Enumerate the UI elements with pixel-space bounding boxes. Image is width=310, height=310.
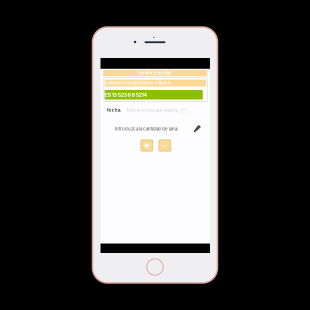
button[interactable]: ES13523685214 (105, 90, 203, 99)
button[interactable]: Editar cantidad de lana (194, 125, 201, 132)
button[interactable]: Añadir fecha (181, 107, 188, 114)
button[interactable]: Aceptar (159, 140, 171, 151)
staticText: Fecha: (107, 107, 121, 113)
button[interactable]: Añadir Esquileo (103, 70, 207, 76)
staticText: Introduzca la cantidad de lana: (115, 126, 178, 132)
staticText: Seleccione la explotación/rebaño: (105, 81, 172, 86)
staticText: ES13523685214 (105, 91, 148, 98)
staticText: Añadir Esquileo (139, 70, 172, 75)
button[interactable]: Grabar (141, 140, 153, 151)
staticText: Pulse en el icono para añadir la... (127, 109, 181, 112)
